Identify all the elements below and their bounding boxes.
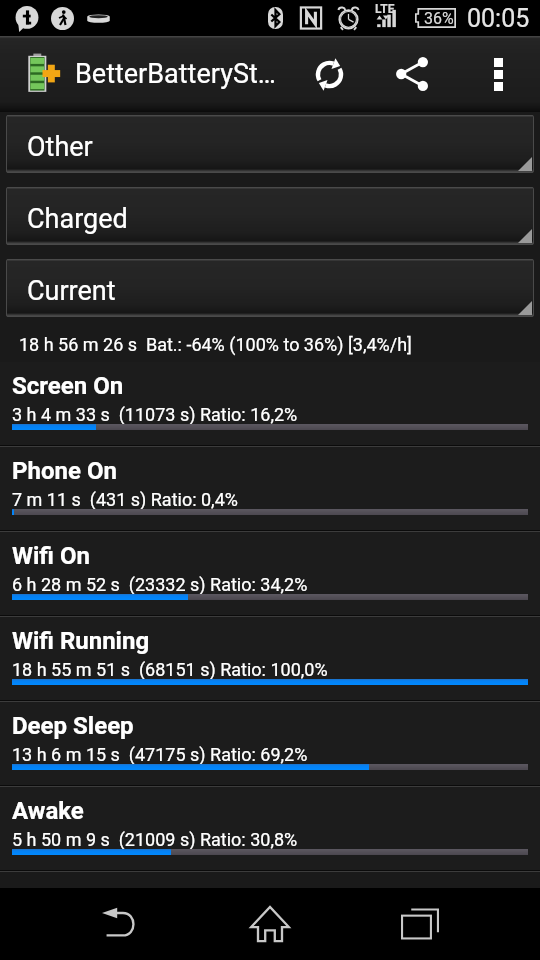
button[interactable]: Charged [6,187,534,245]
staticText: Other [27,131,93,163]
staticText: Phone On [12,457,117,485]
staticText: 3 h 4 m 33 s (11073 s) Ratio: 16,2% [12,404,298,425]
button[interactable]: Wifi Running [0,617,540,702]
staticText: Wifi Running [12,627,150,655]
button[interactable]: More options [462,36,534,112]
button[interactable]: Share [373,36,453,112]
staticText: 36% [424,9,454,28]
button[interactable]: Phone On [0,447,540,532]
staticText: 6 h 28 m 52 s (23332 s) Ratio: 34,2% [12,574,308,595]
staticText: Current [27,275,116,307]
staticText: 13 h 6 m 15 s (47175 s) Ratio: 69,2% [12,744,308,765]
staticText: 00:05 [467,4,530,33]
button[interactable]: Deep Sleep [0,702,540,787]
button[interactable]: Screen On [0,362,540,447]
button[interactable]: Recents [360,888,480,960]
staticText: 5 h 50 m 9 s (21009 s) Ratio: 30,8% [12,829,298,850]
staticText: Wifi On [12,542,90,570]
staticText: Awake [12,797,84,825]
button[interactable]: Current [6,259,534,317]
staticText: 18 h 56 m 26 s Bat.: -64% (100% to 36%) … [19,334,412,355]
button[interactable]: Home [210,888,330,960]
button[interactable]: Refresh [285,36,373,112]
button[interactable]: Other [6,115,534,173]
staticText: Charged [27,203,128,235]
button[interactable]: Wifi On [0,532,540,617]
staticText: BetterBatterySt… [75,58,276,90]
staticText: 18 h 55 m 51 s (68151 s) Ratio: 100,0% [12,659,328,680]
button[interactable]: Back [61,888,181,960]
staticText: 7 m 11 s (431 s) Ratio: 0,4% [12,489,238,510]
staticText: Deep Sleep [12,712,134,740]
staticText: Screen On [12,372,124,400]
staticText: LTE [375,2,395,16]
button[interactable]: Awake [0,787,540,872]
